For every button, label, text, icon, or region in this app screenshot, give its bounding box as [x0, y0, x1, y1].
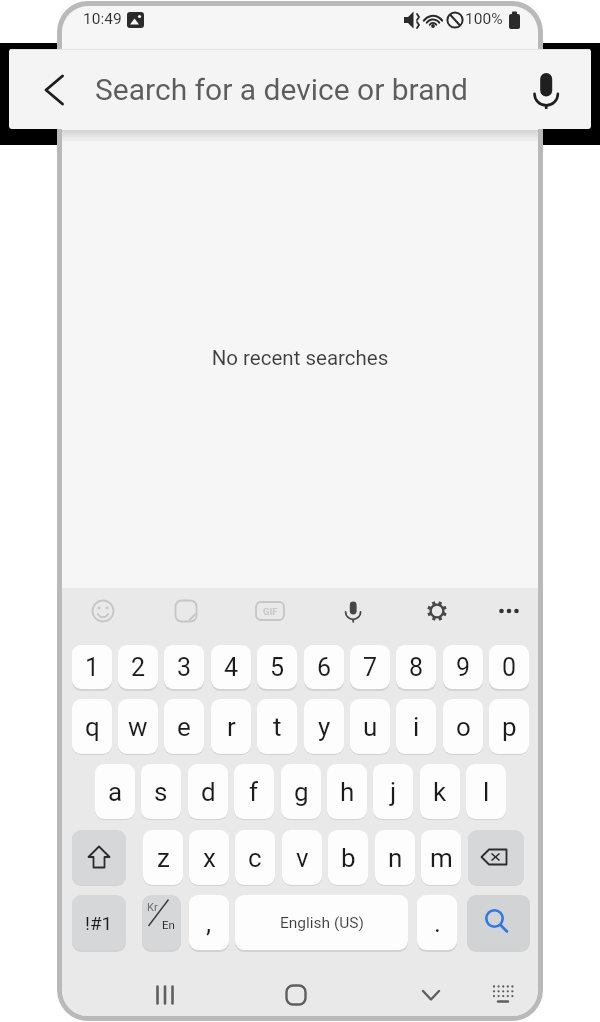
button[interactable]: r [211, 699, 251, 754]
staticText: 0 [502, 653, 517, 682]
button[interactable] [526, 69, 566, 109]
staticText: t [273, 712, 282, 742]
staticText: i [413, 712, 420, 742]
staticText: Search for a device or brand [95, 72, 468, 107]
button[interactable] [467, 895, 530, 950]
button[interactable]: l [466, 764, 506, 819]
button[interactable]: f [234, 764, 274, 819]
staticText: k [433, 777, 447, 807]
button[interactable]: 4 [211, 645, 251, 689]
button[interactable]: Search for a device or brand [9, 49, 591, 129]
button[interactable]: b [328, 830, 368, 885]
button[interactable]: c [235, 830, 275, 885]
button[interactable]: 1 [72, 645, 112, 689]
button[interactable]: x [189, 830, 229, 885]
staticText: English (US) [280, 914, 364, 932]
staticText: 3 [177, 653, 192, 682]
staticText: n [388, 843, 403, 873]
button[interactable]: u [350, 699, 390, 754]
button[interactable]: t [257, 699, 297, 754]
staticText: p [502, 712, 517, 742]
button[interactable]: e [164, 699, 204, 754]
button[interactable] [488, 981, 518, 1009]
staticText: 5 [270, 653, 285, 682]
staticText: s [154, 777, 168, 807]
button[interactable]: English (US) [235, 895, 408, 950]
button[interactable]: 3 [164, 645, 204, 689]
button[interactable]: 2 [118, 645, 158, 689]
button[interactable]: y [304, 699, 344, 754]
staticText: 4 [224, 653, 239, 682]
button[interactable]: v [282, 830, 322, 885]
button[interactable] [173, 598, 199, 624]
button[interactable]: n [375, 830, 415, 885]
staticText: g [294, 777, 309, 807]
staticText: !#1 [85, 912, 113, 934]
staticText: l [483, 777, 490, 807]
button[interactable] [416, 981, 446, 1009]
staticText: y [318, 712, 331, 742]
staticText: 100% [465, 10, 503, 28]
staticText: Kr [147, 901, 158, 914]
button[interactable]: o [443, 699, 483, 754]
staticText: m [430, 843, 453, 873]
button[interactable] [150, 981, 180, 1009]
button[interactable]: z [143, 830, 183, 885]
button[interactable]: q [72, 699, 112, 754]
staticText: 6 [317, 653, 332, 682]
staticText: u [363, 712, 378, 742]
staticText: 10:49 [83, 10, 122, 28]
staticText: 2 [131, 653, 146, 682]
button[interactable]: g [281, 764, 321, 819]
button[interactable] [142, 895, 181, 950]
staticText: x [203, 843, 216, 873]
staticText: r [227, 712, 236, 742]
button[interactable]: 7 [350, 645, 390, 689]
staticText: f [249, 777, 259, 807]
button[interactable]: j [373, 764, 413, 819]
button[interactable]: w [118, 699, 158, 754]
staticText: , [206, 908, 212, 938]
staticText: No recent searches [62, 346, 538, 372]
staticText: 7 [363, 653, 378, 682]
staticText: w [128, 712, 148, 742]
staticText: . [434, 908, 441, 938]
button[interactable]: GIF [256, 602, 284, 620]
staticText: d [201, 777, 216, 807]
button[interactable]: a [95, 764, 135, 819]
staticText: q [85, 712, 100, 742]
staticText: 1 [85, 653, 100, 682]
staticText: j [390, 777, 397, 807]
button[interactable]: 0 [489, 645, 529, 689]
button[interactable]: 5 [257, 645, 297, 689]
button[interactable] [72, 830, 126, 885]
staticText: z [157, 843, 170, 873]
button[interactable] [281, 981, 311, 1009]
staticText: 8 [409, 653, 424, 682]
button[interactable] [340, 598, 366, 624]
button[interactable]: 6 [304, 645, 344, 689]
button[interactable]: s [141, 764, 181, 819]
button[interactable]: !#1 [72, 895, 126, 950]
staticText: En [162, 918, 175, 931]
button[interactable]: d [188, 764, 228, 819]
button[interactable]: h [327, 764, 367, 819]
staticText: a [108, 777, 123, 807]
button[interactable]: , [189, 895, 229, 950]
button[interactable]: m [421, 830, 461, 885]
button[interactable]: k [420, 764, 460, 819]
button[interactable] [496, 598, 522, 624]
button[interactable]: 9 [443, 645, 483, 689]
staticText: b [341, 843, 356, 873]
staticText: v [296, 843, 309, 873]
button[interactable] [39, 69, 79, 109]
button[interactable] [90, 598, 116, 624]
button[interactable] [424, 598, 450, 624]
staticText: c [248, 843, 262, 873]
button[interactable]: 8 [396, 645, 436, 689]
button[interactable]: . [417, 895, 457, 950]
button[interactable]: p [489, 699, 529, 754]
button[interactable]: i [396, 699, 436, 754]
button[interactable] [468, 830, 524, 885]
staticText: e [177, 712, 191, 742]
